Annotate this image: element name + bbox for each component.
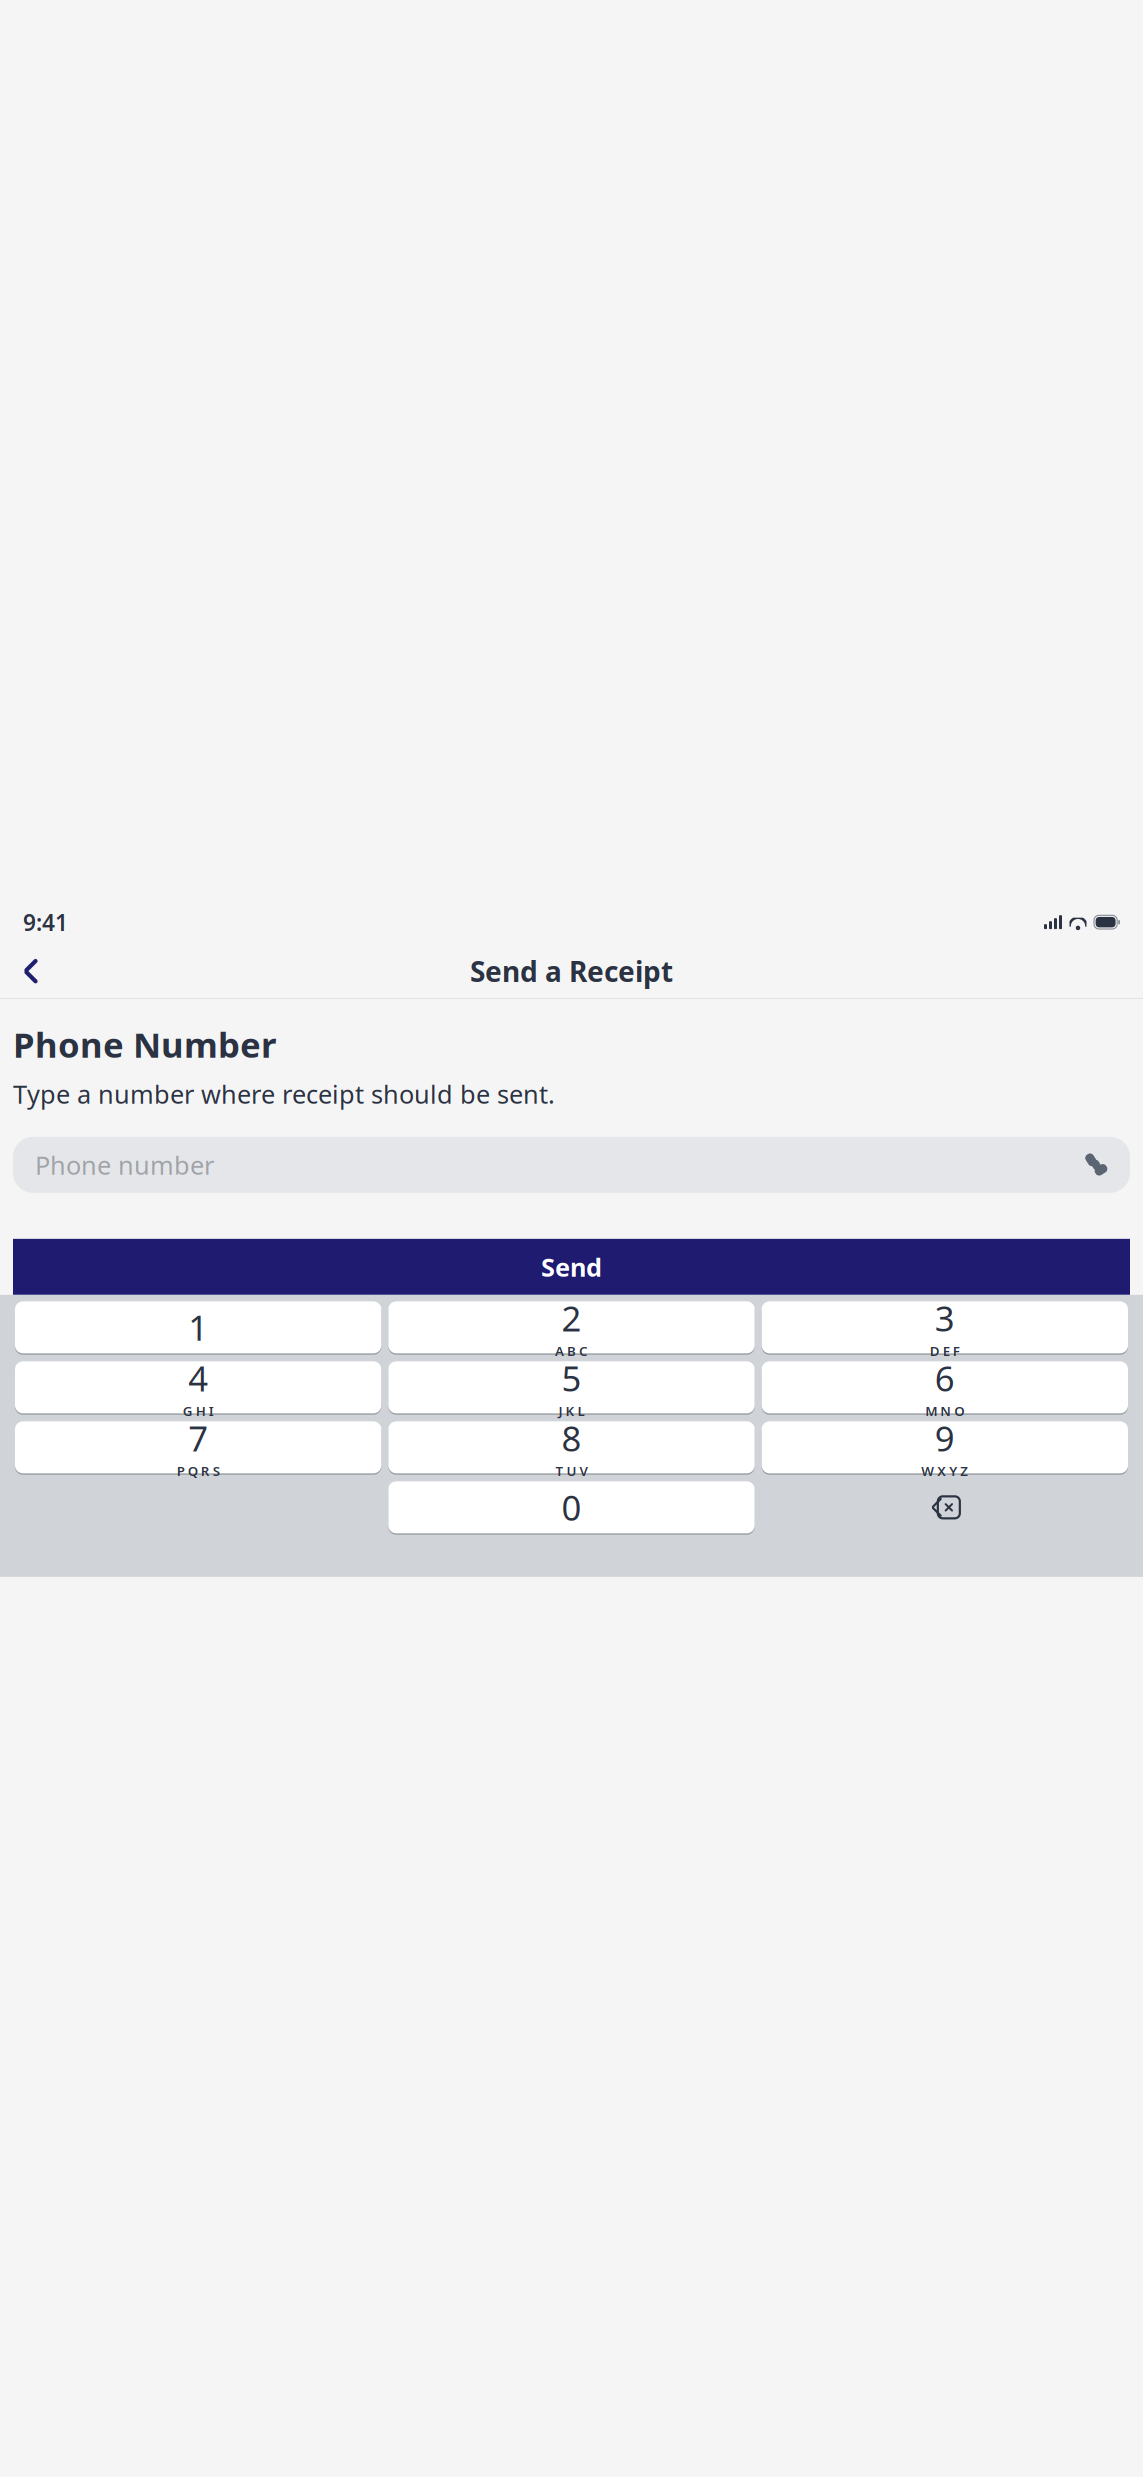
- button[interactable]: 5: [388, 1361, 755, 1414]
- button[interactable]: 1: [15, 1301, 381, 1354]
- staticText: M N O: [925, 1402, 964, 1420]
- staticText: 0: [561, 1484, 581, 1530]
- staticText: Phone number: [35, 1148, 214, 1182]
- button[interactable]: 9: [762, 1421, 1128, 1474]
- button[interactable]: Phone number: [13, 1137, 1130, 1193]
- staticText: Phone Number: [13, 1021, 276, 1067]
- button[interactable]: 2: [388, 1301, 755, 1354]
- button[interactable]: Send: [13, 1239, 1130, 1295]
- staticText: A B C: [555, 1342, 588, 1360]
- staticText: 9: [935, 1415, 955, 1461]
- staticText: 8: [561, 1415, 581, 1461]
- staticText: T U V: [555, 1462, 587, 1480]
- button[interactable]: Back: [8, 948, 54, 994]
- button[interactable]: Delete: [762, 1481, 1128, 1534]
- staticText: J K L: [558, 1402, 584, 1420]
- staticText: D E F: [930, 1342, 960, 1360]
- button[interactable]: 6: [762, 1361, 1128, 1414]
- button[interactable]: 4: [15, 1361, 381, 1414]
- staticText: Send: [541, 1250, 602, 1284]
- staticText: 2: [561, 1295, 581, 1341]
- staticText: W X Y Z: [921, 1462, 968, 1480]
- staticText: 5: [561, 1355, 581, 1401]
- button[interactable]: 8: [388, 1421, 755, 1474]
- staticText: 4: [188, 1355, 208, 1401]
- staticText: 6: [935, 1355, 955, 1401]
- staticText: 3: [935, 1295, 955, 1341]
- button[interactable]: 3: [762, 1301, 1128, 1354]
- staticText: 7: [188, 1415, 208, 1461]
- staticText: 1: [188, 1304, 208, 1350]
- staticText: Type a number where receipt should be se…: [13, 1077, 555, 1111]
- staticText: 9:41: [23, 907, 68, 937]
- button[interactable]: 0: [388, 1481, 755, 1534]
- staticText: P Q R S: [177, 1462, 220, 1480]
- button[interactable]: 7: [15, 1421, 381, 1474]
- staticText: Send a Receipt: [470, 953, 673, 990]
- staticText: G H I: [183, 1402, 214, 1420]
